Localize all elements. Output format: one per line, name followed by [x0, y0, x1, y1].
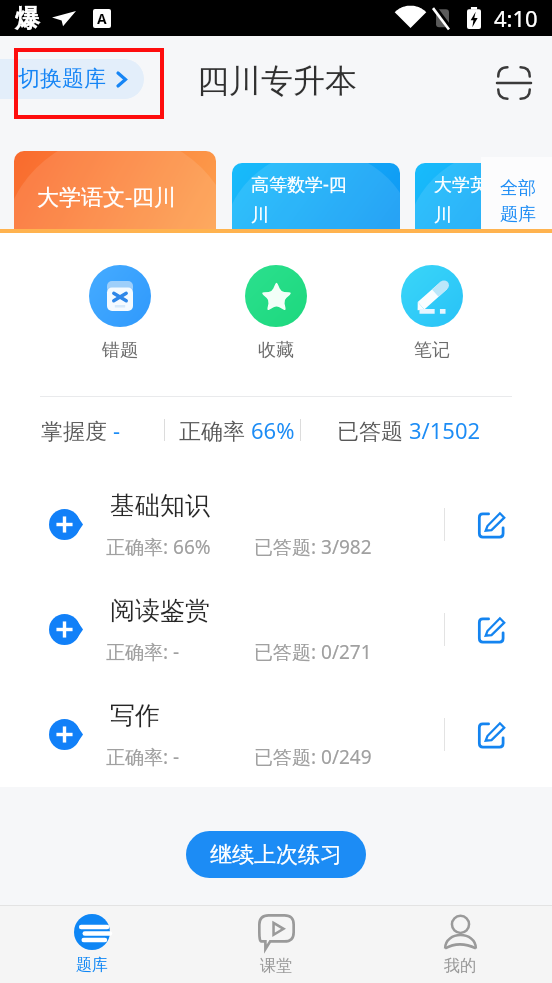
staticText: 已答题 — [337, 415, 409, 445]
staticText: 错题 — [102, 339, 138, 362]
staticText: 3/1502 — [409, 415, 481, 445]
staticText: 掌握度 — [41, 415, 113, 445]
staticText: A — [97, 9, 107, 28]
staticText: 继续上次练习 — [210, 841, 342, 869]
staticText: 基础知识 — [110, 490, 210, 521]
staticText: 66% — [251, 415, 295, 445]
staticText: 题库 — [76, 955, 108, 975]
staticText: 课堂 — [260, 956, 292, 976]
staticText: - — [113, 415, 121, 445]
staticText: 收藏 — [258, 339, 294, 362]
staticText: 已答题: 3/982 — [254, 534, 372, 560]
button[interactable]: 阅读鉴赏 — [0, 577, 552, 682]
button[interactable]: 继续上次练习 — [186, 831, 366, 878]
button[interactable]: 大学语文-四川 — [14, 151, 216, 229]
staticText: 全部 题库 — [500, 177, 536, 225]
staticText: 切换题库 — [18, 65, 106, 93]
button[interactable]: 我的 — [368, 906, 552, 983]
staticText: 正确率 — [179, 415, 251, 445]
button[interactable]: 收藏 — [245, 265, 307, 362]
button[interactable]: Scan — [490, 59, 538, 107]
button[interactable]: Edit — [459, 493, 523, 557]
staticText: 正确率: - — [106, 744, 180, 770]
button[interactable]: 高等数学-四川 — [232, 163, 400, 229]
staticText: 正确率: - — [106, 639, 180, 665]
button[interactable]: 基础知识 — [0, 472, 552, 577]
button[interactable]: 课堂 — [184, 906, 368, 983]
button[interactable]: 题库 — [0, 906, 184, 983]
staticText: 高等数学-四川 — [251, 172, 351, 226]
staticText: 爆 — [15, 3, 40, 34]
staticText: 写作 — [110, 700, 160, 731]
button[interactable]: Edit — [459, 703, 523, 767]
staticText: 我的 — [444, 956, 476, 976]
staticText: 阅读鉴赏 — [110, 595, 210, 626]
staticText: 笔记 — [414, 339, 450, 362]
staticText: 大学语文-四川 — [37, 181, 177, 211]
staticText: 大学英语-四川 — [434, 172, 534, 226]
button[interactable]: Edit — [459, 598, 523, 662]
staticText: 已答题: 0/249 — [254, 744, 372, 770]
button[interactable]: 写作 — [0, 682, 552, 787]
button[interactable]: 错题 — [89, 265, 151, 362]
staticText: 正确率: 66% — [106, 534, 211, 560]
staticText: 4:10 — [494, 3, 538, 33]
button[interactable]: 笔记 — [401, 265, 463, 362]
staticText: 已答题: 0/271 — [254, 639, 372, 665]
button[interactable]: 切换题库 — [0, 59, 144, 99]
button[interactable]: 全部 题库 — [481, 157, 552, 229]
button[interactable]: 大学英语-四川 — [415, 163, 552, 229]
staticText: 四川专升本 — [197, 61, 357, 101]
